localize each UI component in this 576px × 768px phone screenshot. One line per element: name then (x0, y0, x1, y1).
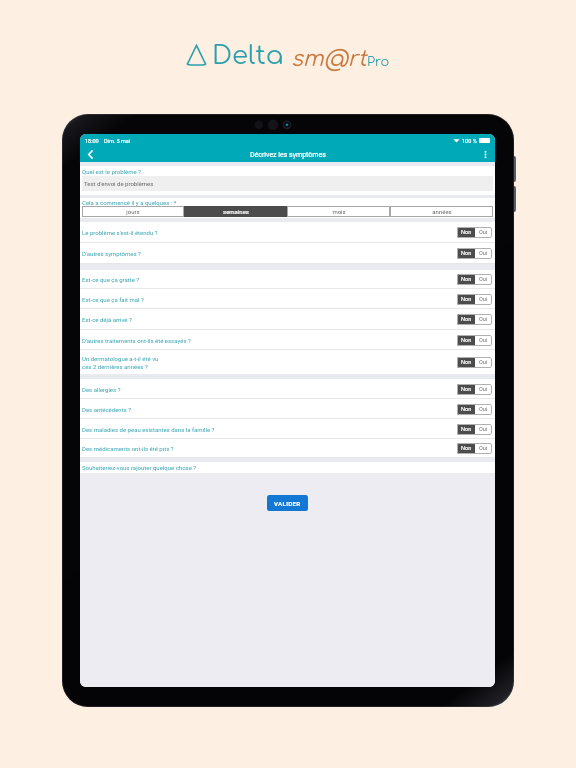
button[interactable]: Non (457, 274, 475, 285)
button[interactable]: Est-ce que ça fait mal ? (80, 289, 495, 309)
staticText: Test d'envoi de problèmes (84, 180, 154, 187)
staticText: Non (461, 445, 472, 452)
staticText: Oui (479, 359, 488, 366)
button[interactable]: D'autres symptômes ? (80, 243, 495, 264)
staticText: Le problème s'est-il étendu ? (82, 229, 158, 236)
staticText: Non (461, 406, 472, 413)
button[interactable]: Non (457, 227, 475, 238)
staticText: Oui (479, 386, 488, 393)
staticText: Oui (479, 406, 488, 413)
button[interactable]: More options (477, 147, 493, 162)
staticText: Décrivez les symptômes (250, 151, 326, 159)
staticText: Un dermatologue a-t-il été vu ces 2 dern… (82, 355, 159, 370)
staticText: Est-ce que ça fait mal ? (82, 296, 144, 303)
button[interactable]: Un dermatologue a-t-il été vu ces 2 dern… (80, 350, 495, 374)
staticText: Oui (479, 250, 488, 257)
staticText: Non (461, 359, 472, 366)
button[interactable]: Oui (475, 443, 492, 454)
button[interactable]: Oui (475, 227, 492, 238)
staticText: Pro (367, 55, 390, 69)
staticText: D'autres traitements ont-ils été essayés… (82, 337, 191, 344)
button[interactable]: Non (457, 314, 475, 325)
button[interactable]: années (390, 206, 493, 217)
staticText: jours (126, 208, 140, 215)
staticText: Oui (479, 276, 488, 283)
button[interactable]: Non (457, 294, 475, 305)
staticText: Oui (479, 316, 488, 323)
button[interactable]: Oui (475, 294, 492, 305)
staticText: Delta (212, 41, 284, 70)
button[interactable]: Oui (475, 248, 492, 259)
button[interactable]: VALIDER (267, 495, 308, 511)
button[interactable]: Oui (475, 357, 492, 368)
staticText: Des antécédents ? (82, 406, 132, 413)
button[interactable]: Est-ce que ça gratte ? (80, 270, 495, 289)
staticText: mois (332, 208, 346, 215)
staticText: Quel est le problème ? (82, 168, 141, 175)
staticText: Oui (479, 296, 488, 303)
button[interactable]: Non (457, 248, 475, 259)
button[interactable]: Oui (475, 274, 492, 285)
button[interactable]: Oui (475, 335, 492, 346)
staticText: semaines (223, 208, 249, 215)
staticText: années (432, 208, 452, 215)
staticText: Oui (479, 337, 488, 344)
staticText: Non (461, 296, 472, 303)
button[interactable]: Des médicaments ont-ils été pris ? (80, 439, 495, 458)
staticText: Souhaiteriez-vous rajouter quelque chose… (82, 464, 197, 471)
button[interactable]: Des antécédents ? (80, 399, 495, 419)
button[interactable]: Back (82, 147, 98, 162)
button[interactable]: Le problème s'est-il étendu ? (80, 222, 495, 243)
staticText: Non (461, 426, 472, 433)
button[interactable]: Oui (475, 314, 492, 325)
staticText: Oui (479, 426, 488, 433)
button[interactable]: mois (287, 206, 390, 217)
staticText: Non (461, 386, 472, 393)
staticText: Des maladies de peau existantes dans la … (82, 426, 215, 433)
staticText: Non (461, 276, 472, 283)
button[interactable]: Souhaiteriez-vous rajouter quelque chose… (80, 462, 495, 473)
staticText: Oui (479, 445, 488, 452)
staticText: Non (461, 337, 472, 344)
staticText: Des allergies ? (82, 386, 121, 393)
staticText: Est-ce déjà arrivé ? (82, 316, 132, 323)
button[interactable]: jours (82, 206, 184, 217)
staticText: Est-ce que ça gratte ? (82, 276, 140, 283)
button[interactable]: Oui (475, 404, 492, 415)
button[interactable]: Non (457, 443, 475, 454)
button[interactable]: Est-ce déjà arrivé ? (80, 309, 495, 330)
button[interactable]: Des maladies de peau existantes dans la … (80, 419, 495, 439)
button[interactable]: D'autres traitements ont-ils été essayés… (80, 330, 495, 350)
button[interactable]: Non (457, 357, 475, 368)
button[interactable]: Non (457, 424, 475, 435)
button[interactable]: semaines (184, 206, 287, 217)
button[interactable]: Non (457, 335, 475, 346)
staticText: VALIDER (274, 500, 301, 507)
staticText: Oui (479, 229, 488, 236)
staticText: Non (461, 250, 472, 257)
button[interactable]: Des allergies ? (80, 379, 495, 399)
staticText: Des médicaments ont-ils été pris ? (82, 445, 174, 452)
staticText: sm@rt (291, 47, 367, 72)
staticText: 18:00 (85, 138, 99, 144)
button[interactable]: Oui (475, 424, 492, 435)
staticText: Cela a commencé il y a quelques : * (82, 199, 177, 206)
staticText: Dim. 5 mai (104, 138, 131, 144)
button[interactable]: Oui (475, 384, 492, 395)
staticText: Non (461, 229, 472, 236)
staticText: Non (461, 316, 472, 323)
staticText: D'autres symptômes ? (82, 250, 141, 257)
staticText: 100 % (462, 138, 477, 144)
button[interactable]: Non (457, 384, 475, 395)
button[interactable]: Non (457, 404, 475, 415)
